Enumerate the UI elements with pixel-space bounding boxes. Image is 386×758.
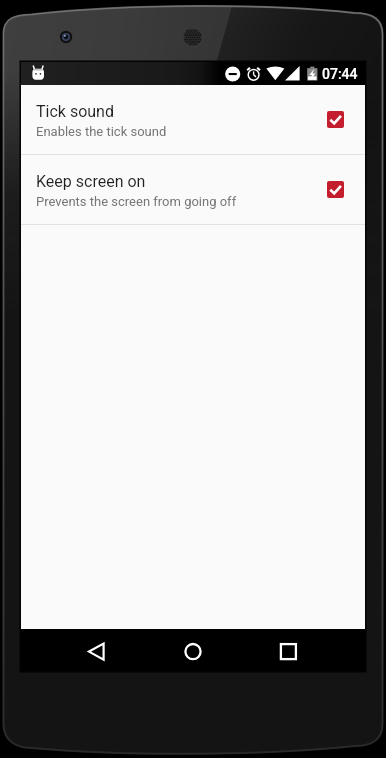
button[interactable]: Keep screen on — [21, 155, 365, 224]
staticText: 07:44 — [322, 66, 358, 82]
button[interactable]: Tick sound — [21, 85, 365, 154]
staticText: Keep screen on — [36, 172, 146, 191]
staticText: Tick sound — [36, 102, 114, 121]
button[interactable]: Home — [171, 629, 215, 671]
button[interactable]: Tick sound checkbox — [327, 111, 344, 128]
button[interactable]: Keep screen on checkbox — [327, 181, 344, 198]
button[interactable]: Back — [74, 629, 119, 671]
staticText: Prevents the screen from going off — [36, 194, 237, 209]
button[interactable]: Recent apps — [266, 629, 311, 671]
staticText: Enables the tick sound — [36, 124, 167, 139]
